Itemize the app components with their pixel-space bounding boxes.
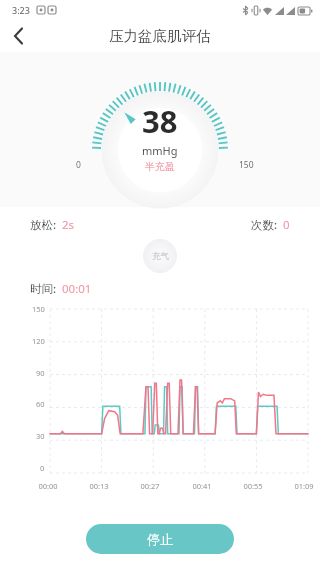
staticText: 3:23 xyxy=(12,4,30,16)
staticText: 00:55 xyxy=(243,481,263,491)
button[interactable]: 停止 xyxy=(86,524,234,554)
staticText: 压力盆底肌评估 xyxy=(109,27,211,45)
staticText: 30 xyxy=(36,431,45,441)
staticText: 放松: xyxy=(30,217,57,233)
staticText: 时间: xyxy=(30,281,57,297)
staticText: 90 xyxy=(36,368,45,378)
staticText: 次数: xyxy=(251,217,278,233)
staticText: 0 xyxy=(283,217,290,233)
staticText: 00:00 xyxy=(38,481,58,491)
staticText: 00:27 xyxy=(140,481,160,491)
staticText: 00:41 xyxy=(192,481,212,491)
staticText: 0 xyxy=(76,159,81,171)
staticText: 00:01 xyxy=(62,281,92,297)
staticText: 150 xyxy=(32,304,45,314)
staticText: 38 xyxy=(142,100,178,142)
staticText: 0 xyxy=(40,463,45,473)
staticText: 150 xyxy=(239,159,254,171)
button[interactable]: Back xyxy=(0,20,36,52)
staticText: mmHg xyxy=(142,143,178,158)
staticText: 00:13 xyxy=(89,481,109,491)
staticText: 01:09 xyxy=(294,481,314,491)
staticText: 120 xyxy=(32,336,45,346)
staticText: 半充盈 xyxy=(145,160,175,173)
staticText: 停止 xyxy=(147,531,173,547)
staticText: 2s xyxy=(62,217,75,233)
staticText: 充气 xyxy=(152,251,169,262)
button[interactable]: 充气 xyxy=(143,239,177,273)
staticText: 60 xyxy=(36,399,45,409)
